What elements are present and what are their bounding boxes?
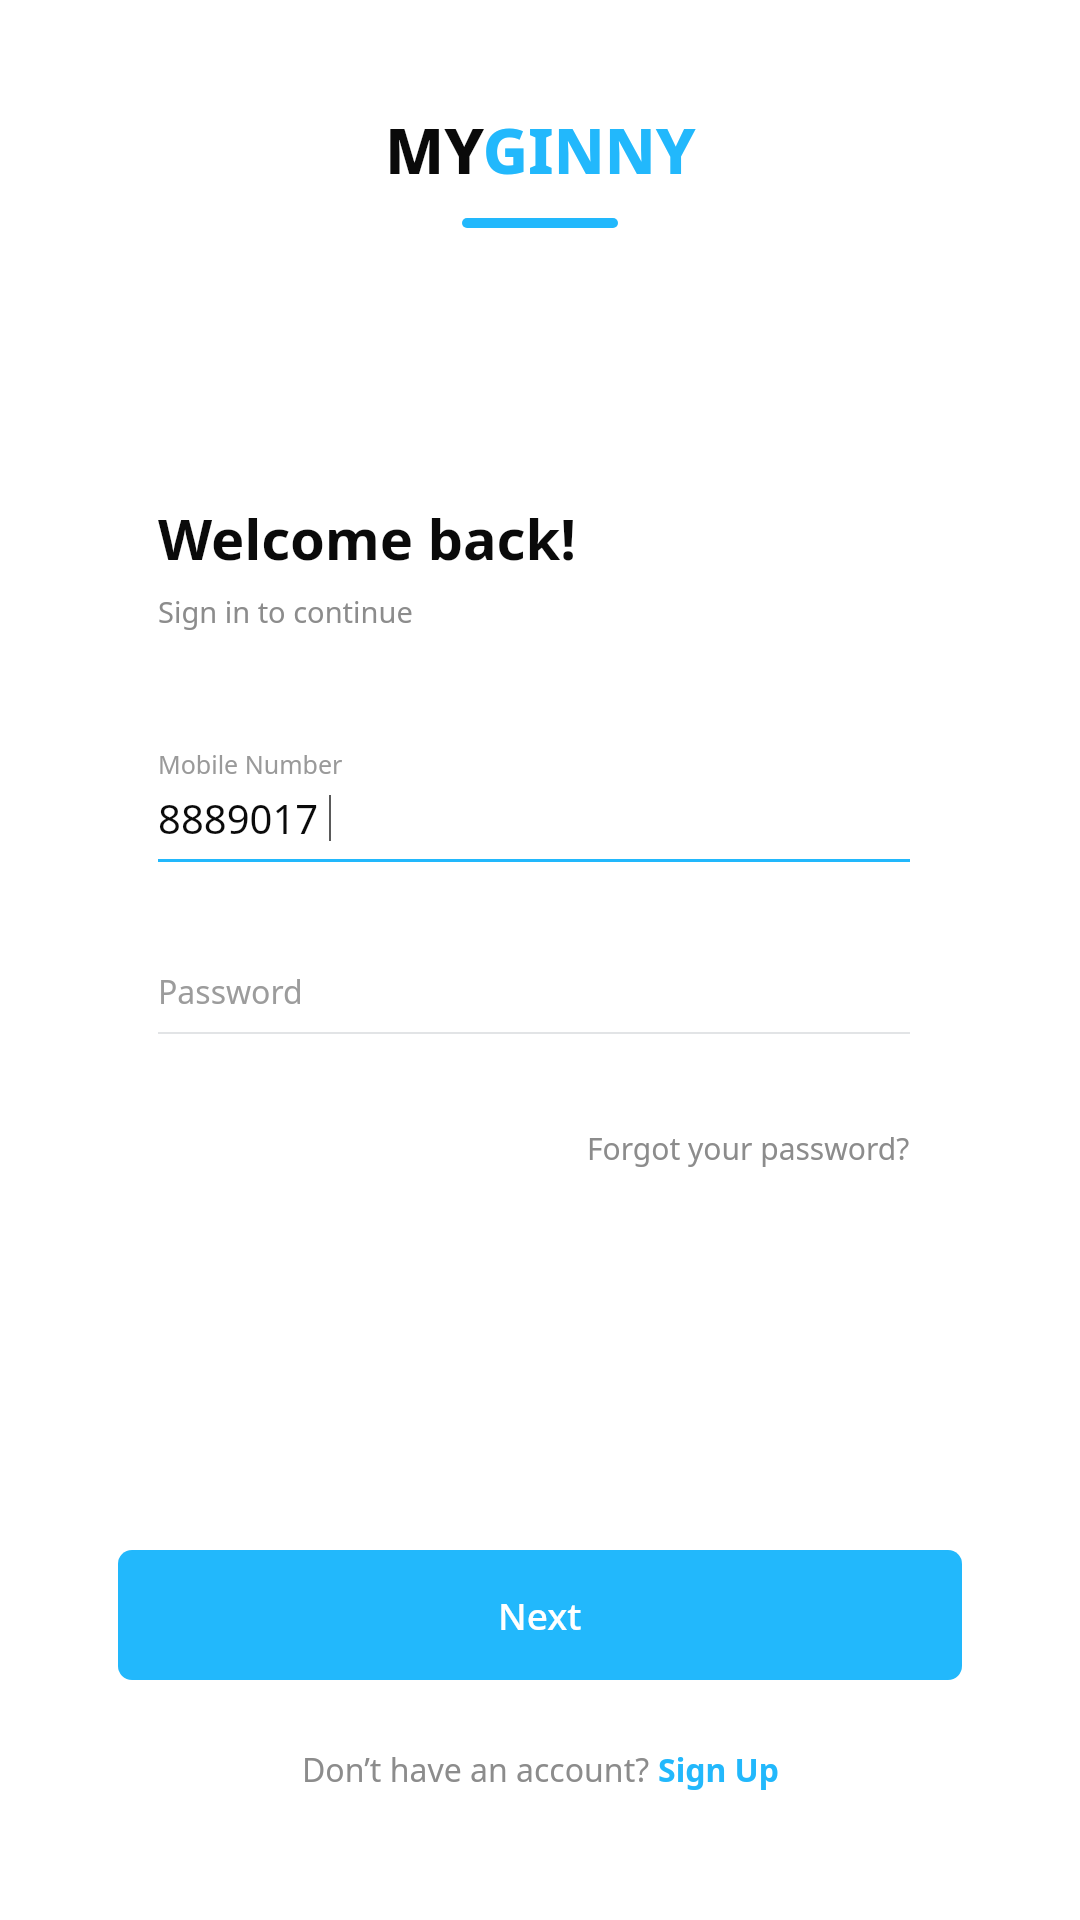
staticText: Next bbox=[498, 1590, 582, 1640]
button[interactable]: Forgot your password? bbox=[587, 1128, 910, 1169]
staticText: Welcome back! bbox=[158, 500, 576, 576]
staticText: Password bbox=[158, 970, 303, 1014]
staticText: MYGINNY bbox=[385, 108, 696, 192]
button[interactable]: Mobile Number bbox=[158, 747, 910, 862]
button[interactable]: Password bbox=[158, 970, 910, 1034]
button[interactable]: Next bbox=[118, 1550, 962, 1680]
staticText: 8889017 bbox=[158, 791, 319, 845]
staticText: Mobile Number bbox=[158, 747, 343, 781]
button[interactable]: Sign Up bbox=[658, 1748, 779, 1792]
staticText: Don’t have an account? bbox=[302, 1748, 658, 1792]
staticText: Sign in to continue bbox=[158, 592, 413, 631]
